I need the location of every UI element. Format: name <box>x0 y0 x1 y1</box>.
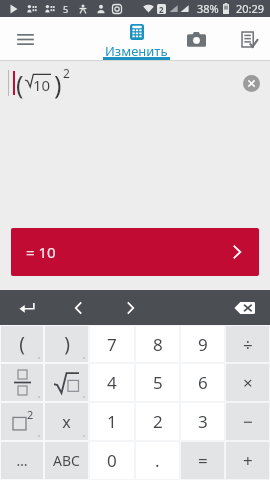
staticText: . <box>155 449 160 472</box>
button[interactable]: 2 <box>136 403 179 440</box>
button[interactable]: ( <box>1 326 43 362</box>
button[interactable]: = 10 <box>11 228 259 276</box>
staticText: ) <box>64 331 70 357</box>
button[interactable]: Next <box>102 290 158 325</box>
button[interactable]: 6 <box>181 364 224 401</box>
staticText: × <box>243 371 253 394</box>
staticText: 1 <box>107 410 117 433</box>
button[interactable]: x <box>45 403 88 440</box>
button[interactable]: Enter <box>0 290 54 325</box>
staticText: 9 <box>198 333 208 356</box>
button[interactable]: = <box>181 442 224 479</box>
button[interactable]: 1 <box>90 403 134 440</box>
button[interactable]: . <box>136 442 179 479</box>
staticText: 20:29 <box>236 1 265 16</box>
staticText: 2 <box>153 410 163 433</box>
staticText: + <box>243 449 253 472</box>
staticText: − <box>243 410 253 433</box>
staticText: ( <box>16 67 24 99</box>
staticText: ( <box>19 331 25 357</box>
staticText: 10 <box>33 75 51 95</box>
staticText: 8 <box>153 333 163 356</box>
staticText: 7 <box>107 333 117 356</box>
button[interactable]: History <box>228 17 270 61</box>
staticText: ABC <box>53 451 80 470</box>
staticText: = <box>198 449 208 472</box>
button[interactable]: ) <box>45 326 88 362</box>
button[interactable]: Camera <box>186 17 207 61</box>
staticText: 38% <box>197 1 219 16</box>
staticText: 4 <box>107 371 117 394</box>
button[interactable]: 7 <box>90 326 134 362</box>
staticText: Изменить <box>105 42 168 60</box>
button[interactable]: Fraction <box>1 364 43 401</box>
staticText: 2 <box>63 65 70 81</box>
button[interactable]: 4 <box>90 364 134 401</box>
staticText: … <box>16 451 28 470</box>
staticText: 2 <box>159 4 164 14</box>
staticText: 5 <box>63 3 69 15</box>
button[interactable]: Square <box>1 403 43 440</box>
button[interactable]: 0 <box>90 442 134 479</box>
staticText: ÷ <box>243 333 253 356</box>
staticText: = 10 <box>26 242 56 262</box>
staticText: 3 <box>198 410 208 433</box>
button[interactable]: Menu <box>0 17 50 61</box>
button[interactable]: Clear <box>243 75 260 92</box>
button[interactable]: + <box>226 442 269 479</box>
button[interactable]: Square root <box>45 364 88 401</box>
button[interactable]: × <box>226 364 269 401</box>
button[interactable]: ABC <box>45 442 88 479</box>
button[interactable]: Backspace <box>218 290 270 325</box>
staticText: 2 <box>27 407 34 422</box>
staticText: 6 <box>198 371 208 394</box>
button[interactable]: 3 <box>181 403 224 440</box>
staticText: 5 <box>153 371 163 394</box>
button[interactable]: Изменить <box>87 17 186 61</box>
button[interactable]: Previous <box>54 290 102 325</box>
staticText: ) <box>54 67 62 99</box>
button[interactable]: ÷ <box>226 326 269 362</box>
button[interactable]: 5 <box>136 364 179 401</box>
staticText: 0 <box>107 449 117 472</box>
staticText: x <box>62 411 71 433</box>
button[interactable]: − <box>226 403 269 440</box>
button[interactable]: 8 <box>136 326 179 362</box>
button[interactable]: 9 <box>181 326 224 362</box>
button[interactable]: … <box>1 442 43 479</box>
